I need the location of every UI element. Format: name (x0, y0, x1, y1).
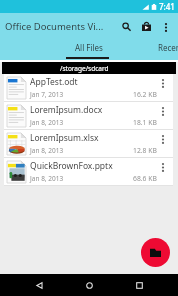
button[interactable]: Item options (153, 102, 173, 120)
staticText: Recent (158, 42, 178, 53)
staticText: All Files (75, 42, 103, 53)
staticText: 16.2 KB (133, 90, 157, 99)
button[interactable]: Item options (153, 74, 173, 92)
button[interactable]: Item options (153, 130, 173, 148)
staticText: 7:41 (159, 1, 175, 12)
button[interactable]: Recent (133, 37, 178, 58)
button[interactable]: Search (117, 13, 136, 39)
button[interactable]: Home (78, 274, 100, 296)
button[interactable]: Recents (128, 274, 150, 296)
staticText: LoremIpsum.xlsx (30, 132, 99, 144)
staticText: Jan 7, 2013 (30, 90, 64, 99)
staticText: Jan 8, 2013 (30, 146, 64, 155)
button[interactable]: All Files (45, 37, 133, 58)
button[interactable]: LoremIpsum.docx (4, 102, 173, 130)
button[interactable]: Back (28, 274, 50, 296)
button[interactable]: AppTest.odt (4, 74, 173, 102)
staticText: /storage/sdcard (60, 64, 109, 73)
button[interactable]: More options (157, 13, 175, 39)
button[interactable]: /storage/sdcard (2, 62, 176, 74)
staticText: Jan 8, 2013 (30, 174, 64, 183)
staticText: 68.6 KB (133, 174, 157, 183)
staticText: Office Documents Vi... (5, 20, 117, 33)
staticText: LoremIpsum.docx (30, 104, 103, 116)
staticText: AppTest.odt (30, 76, 78, 88)
button[interactable]: Get apps (136, 13, 157, 39)
staticText: 12.8 KB (133, 146, 157, 155)
staticText: Jan 8, 2013 (30, 118, 64, 127)
button[interactable]: QuickBrownFox.pptx (4, 158, 173, 186)
button[interactable]: Item options (153, 158, 173, 176)
button[interactable]: LoremIpsum.xlsx (4, 130, 173, 158)
staticText: 18.1 KB (133, 118, 157, 127)
button[interactable]: New folder (141, 238, 170, 267)
staticText: QuickBrownFox.pptx (30, 160, 113, 172)
